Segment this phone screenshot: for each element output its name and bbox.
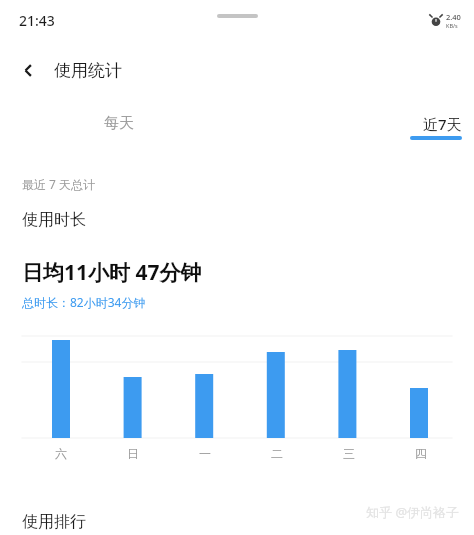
staticText: 21:43 [19,11,55,30]
staticText: 三 [343,446,355,461]
button[interactable]: 近7天 [237,108,474,148]
staticText: 每天 [104,114,134,133]
staticText: 使用时长 [22,210,86,230]
staticText: 近7天 [423,114,462,134]
staticText: KB/s [446,22,458,29]
staticText: 日 [127,446,139,461]
button[interactable]: 每天 [0,108,237,148]
staticText: 二 [271,446,283,461]
staticText: 六 [55,446,67,461]
staticText: 使用统计 [54,60,122,81]
staticText: 2.40 [446,12,461,22]
staticText: 一 [199,446,211,461]
staticText: 使用排行 [22,512,86,532]
staticText: 最近 7 天总计 [22,176,96,192]
staticText: 四 [415,446,427,461]
staticText: 知乎 @伊尚袼子 [366,503,460,521]
button[interactable]: Back [12,54,44,86]
staticText: 日均11小时 47分钟 [22,258,202,287]
staticText: 总时长：82小时34分钟 [22,294,146,310]
